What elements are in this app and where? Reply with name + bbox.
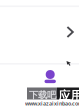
button[interactable]: Open — [66, 26, 74, 38]
staticText: 下载吧 — [29, 89, 56, 101]
staticText: 应用 — [58, 88, 79, 103]
staticText: www.xiazaixinbao.com — [25, 100, 79, 107]
